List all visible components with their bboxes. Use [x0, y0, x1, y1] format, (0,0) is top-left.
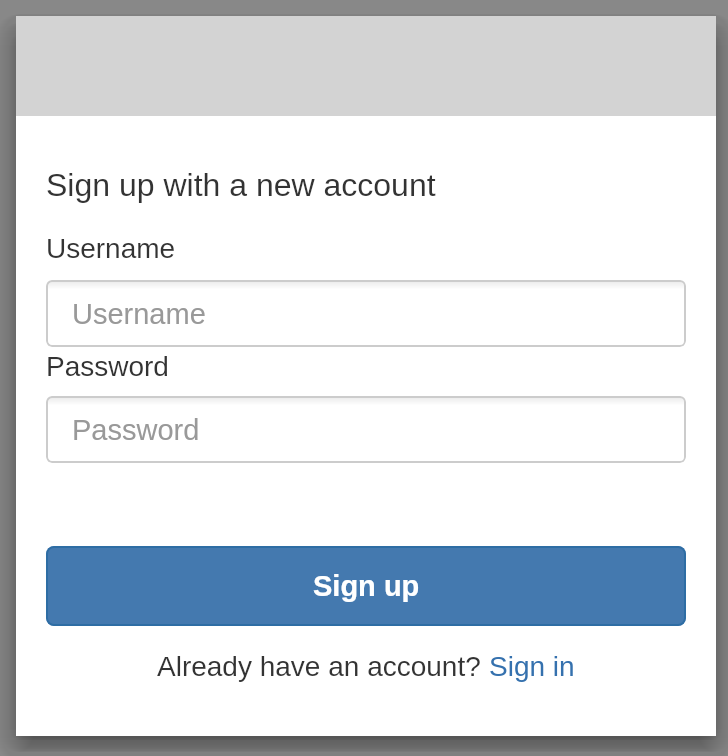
staticText: Username: [72, 298, 206, 330]
staticText: Already have an account?: [157, 651, 489, 682]
staticText: Password: [72, 414, 200, 446]
button[interactable]: Sign up: [46, 546, 686, 626]
button[interactable]: Password input field: [46, 396, 686, 463]
staticText: Sign up with a new account: [46, 167, 436, 203]
button[interactable]: Sign in: [489, 651, 575, 682]
staticText: Password: [46, 351, 169, 382]
staticText: Sign up: [313, 570, 420, 602]
staticText: Username: [46, 233, 176, 264]
staticText: Sign in: [489, 651, 575, 682]
button[interactable]: Username input field: [46, 280, 686, 347]
